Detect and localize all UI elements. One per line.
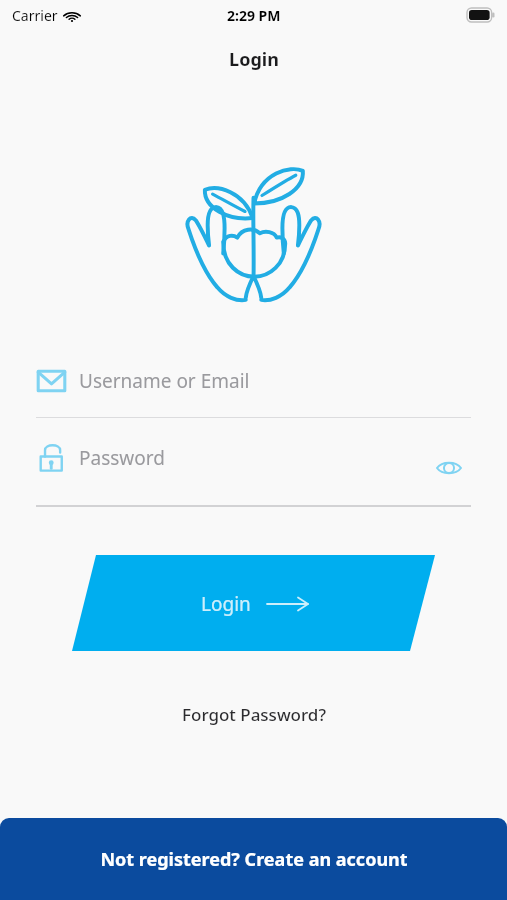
button[interactable]: Forgot Password? [182, 703, 326, 726]
button[interactable]: Show password [425, 445, 473, 491]
staticText: Login [229, 47, 279, 72]
staticText: Forgot Password? [182, 703, 326, 726]
staticText: Username or Email [79, 368, 250, 394]
staticText: 2:29 PM [227, 6, 281, 25]
staticText: Carrier [12, 6, 58, 25]
button[interactable]: Login [60, 550, 450, 658]
staticText: Login [201, 591, 251, 617]
staticText: Password [79, 445, 165, 471]
button[interactable]: Username or Email [36, 368, 471, 420]
button[interactable]: Password [36, 443, 471, 495]
button[interactable]: Not registered? Create an account [0, 818, 507, 900]
staticText: Not registered? Create an account [100, 847, 408, 872]
